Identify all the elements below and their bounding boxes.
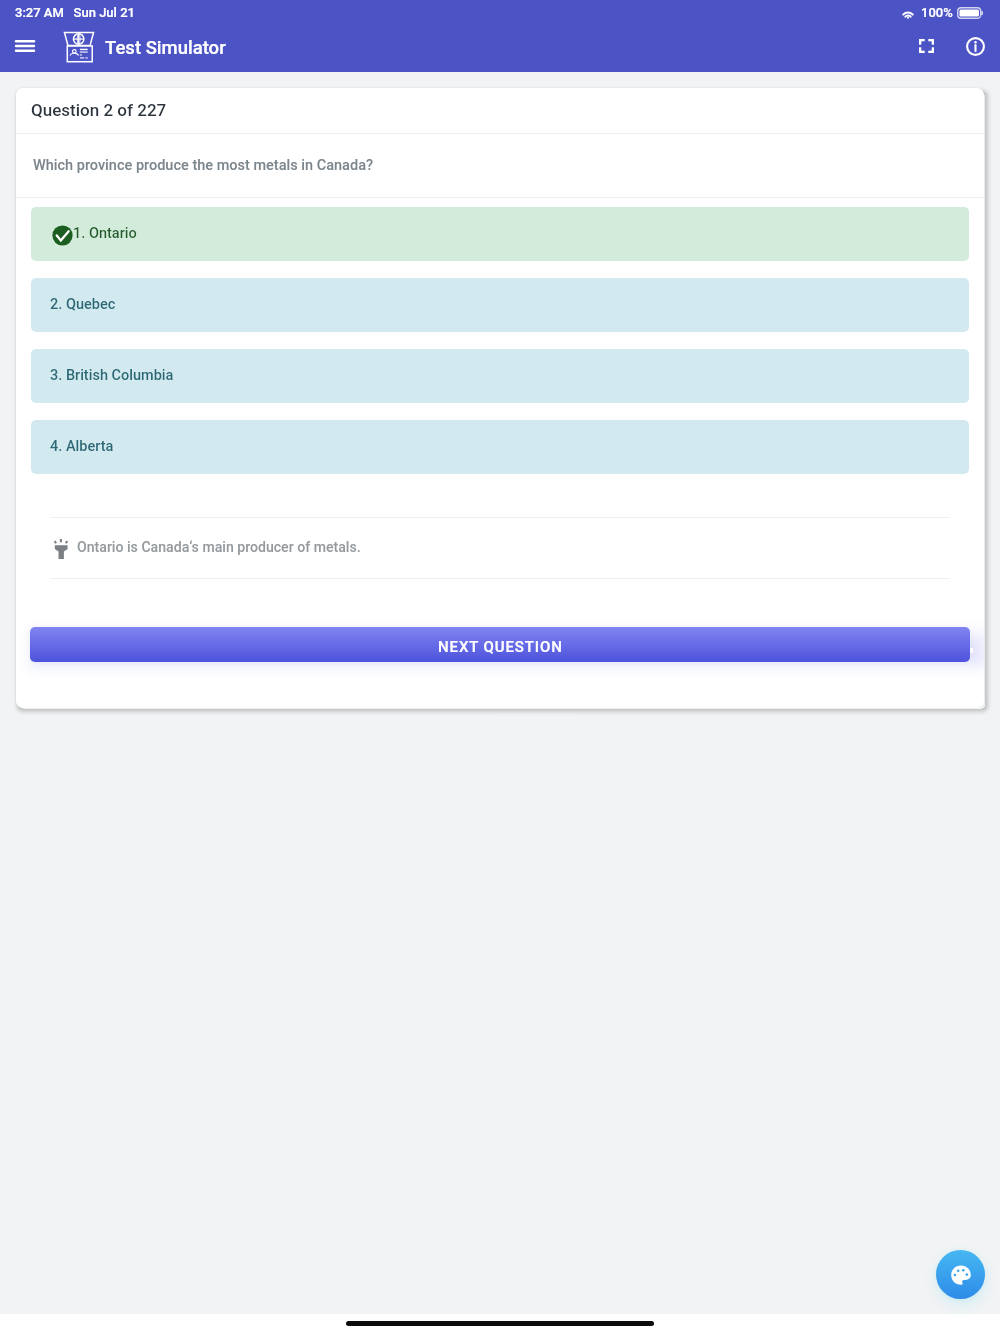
staticText: 3:27 AM Sun Jul 21 (15, 5, 135, 20)
staticText: Test Simulator (105, 37, 226, 59)
staticText: 2. Quebec (50, 296, 116, 313)
button[interactable]: Menu (5, 28, 45, 64)
button[interactable]: NEXT QUESTION (30, 627, 970, 662)
button[interactable]: 1. Ontario (31, 207, 969, 261)
button[interactable]: 2. Quebec (31, 278, 969, 332)
staticText: 1. Ontario (73, 225, 137, 242)
staticText: 3. British Columbia (50, 367, 174, 384)
button[interactable]: Information (953, 28, 997, 64)
staticText: Ontario is Canada‘s main producer of met… (77, 539, 361, 556)
staticText: NEXT QUESTION (438, 638, 563, 656)
button[interactable]: 4. Alberta (31, 420, 969, 474)
staticText: Which province produce the most metals i… (33, 157, 374, 174)
button[interactable]: Fullscreen (904, 28, 948, 64)
staticText: 100% (921, 5, 953, 20)
staticText: 4. Alberta (50, 438, 114, 455)
button[interactable]: 3. British Columbia (31, 349, 969, 403)
button[interactable]: Change theme (936, 1250, 985, 1299)
staticText: Question 2 of 227 (31, 100, 167, 120)
